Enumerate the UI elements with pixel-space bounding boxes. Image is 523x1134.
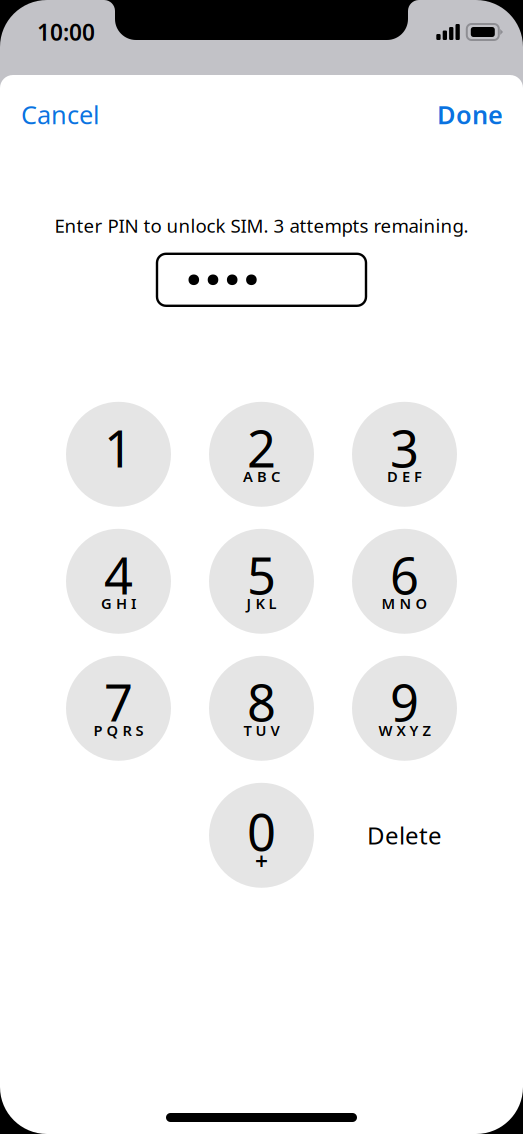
staticText: Enter PIN to unlock SIM. 3 attempts rema… xyxy=(54,213,468,238)
button[interactable]: Done xyxy=(417,80,523,145)
staticText: J K L xyxy=(246,594,276,613)
button[interactable]: 4 xyxy=(66,529,171,634)
staticText: Cancel xyxy=(21,98,100,131)
staticText: 4 xyxy=(104,541,133,608)
staticText: G H I xyxy=(101,594,136,613)
staticText: + xyxy=(255,846,268,876)
staticText: Done xyxy=(437,98,503,131)
staticText: 3 xyxy=(390,414,419,481)
button[interactable]: 2 xyxy=(209,402,314,507)
staticText: 0 xyxy=(247,798,276,865)
staticText: P Q R S xyxy=(93,721,143,740)
staticText: 1 xyxy=(104,414,133,481)
button[interactable]: Cancel xyxy=(0,80,121,145)
staticText: 7 xyxy=(104,668,133,735)
button[interactable]: 8 xyxy=(209,656,314,761)
button[interactable]: 0 xyxy=(209,783,314,888)
staticText: 10:00 xyxy=(37,17,95,47)
staticText: Delete xyxy=(367,819,442,851)
staticText: M N O xyxy=(381,594,427,613)
staticText: 2 xyxy=(247,414,276,481)
button[interactable]: 3 xyxy=(352,402,457,507)
button[interactable]: 6 xyxy=(352,529,457,634)
staticText: D E F xyxy=(387,467,422,486)
staticText: T U V xyxy=(243,721,279,740)
button[interactable]: 9 xyxy=(352,656,457,761)
staticText: 6 xyxy=(390,541,419,608)
staticText: A B C xyxy=(243,467,280,486)
button[interactable]: 7 xyxy=(66,656,171,761)
button[interactable]: Delete xyxy=(352,783,457,888)
staticText: 5 xyxy=(247,541,276,608)
staticText: 8 xyxy=(247,668,276,735)
button[interactable]: 5 xyxy=(209,529,314,634)
staticText: 9 xyxy=(390,668,419,735)
staticText: W X Y Z xyxy=(378,721,430,740)
button[interactable]: 1 xyxy=(66,402,171,507)
